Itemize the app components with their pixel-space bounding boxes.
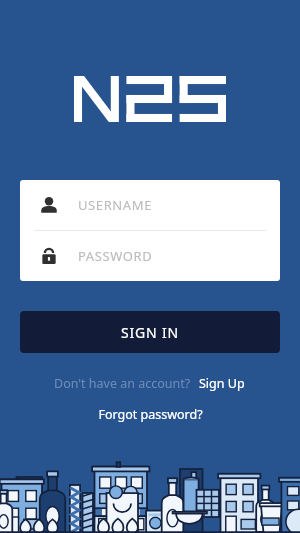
button[interactable]: Forgot password? [94, 402, 207, 427]
staticText: Don't have an account? [54, 375, 191, 392]
staticText: Sign Up [199, 375, 245, 392]
button[interactable]: Sign Up [197, 373, 247, 394]
other: Password [38, 245, 60, 267]
staticText: PASSWORD [78, 247, 153, 265]
other: Username [38, 194, 60, 216]
button[interactable]: Password [20, 231, 280, 281]
button[interactable]: Username [20, 180, 280, 230]
staticText: Forgot password? [98, 406, 203, 423]
staticText: SIGN IN [121, 323, 179, 342]
button[interactable]: SIGN IN [20, 311, 280, 353]
staticText: USERNAME [78, 196, 152, 214]
